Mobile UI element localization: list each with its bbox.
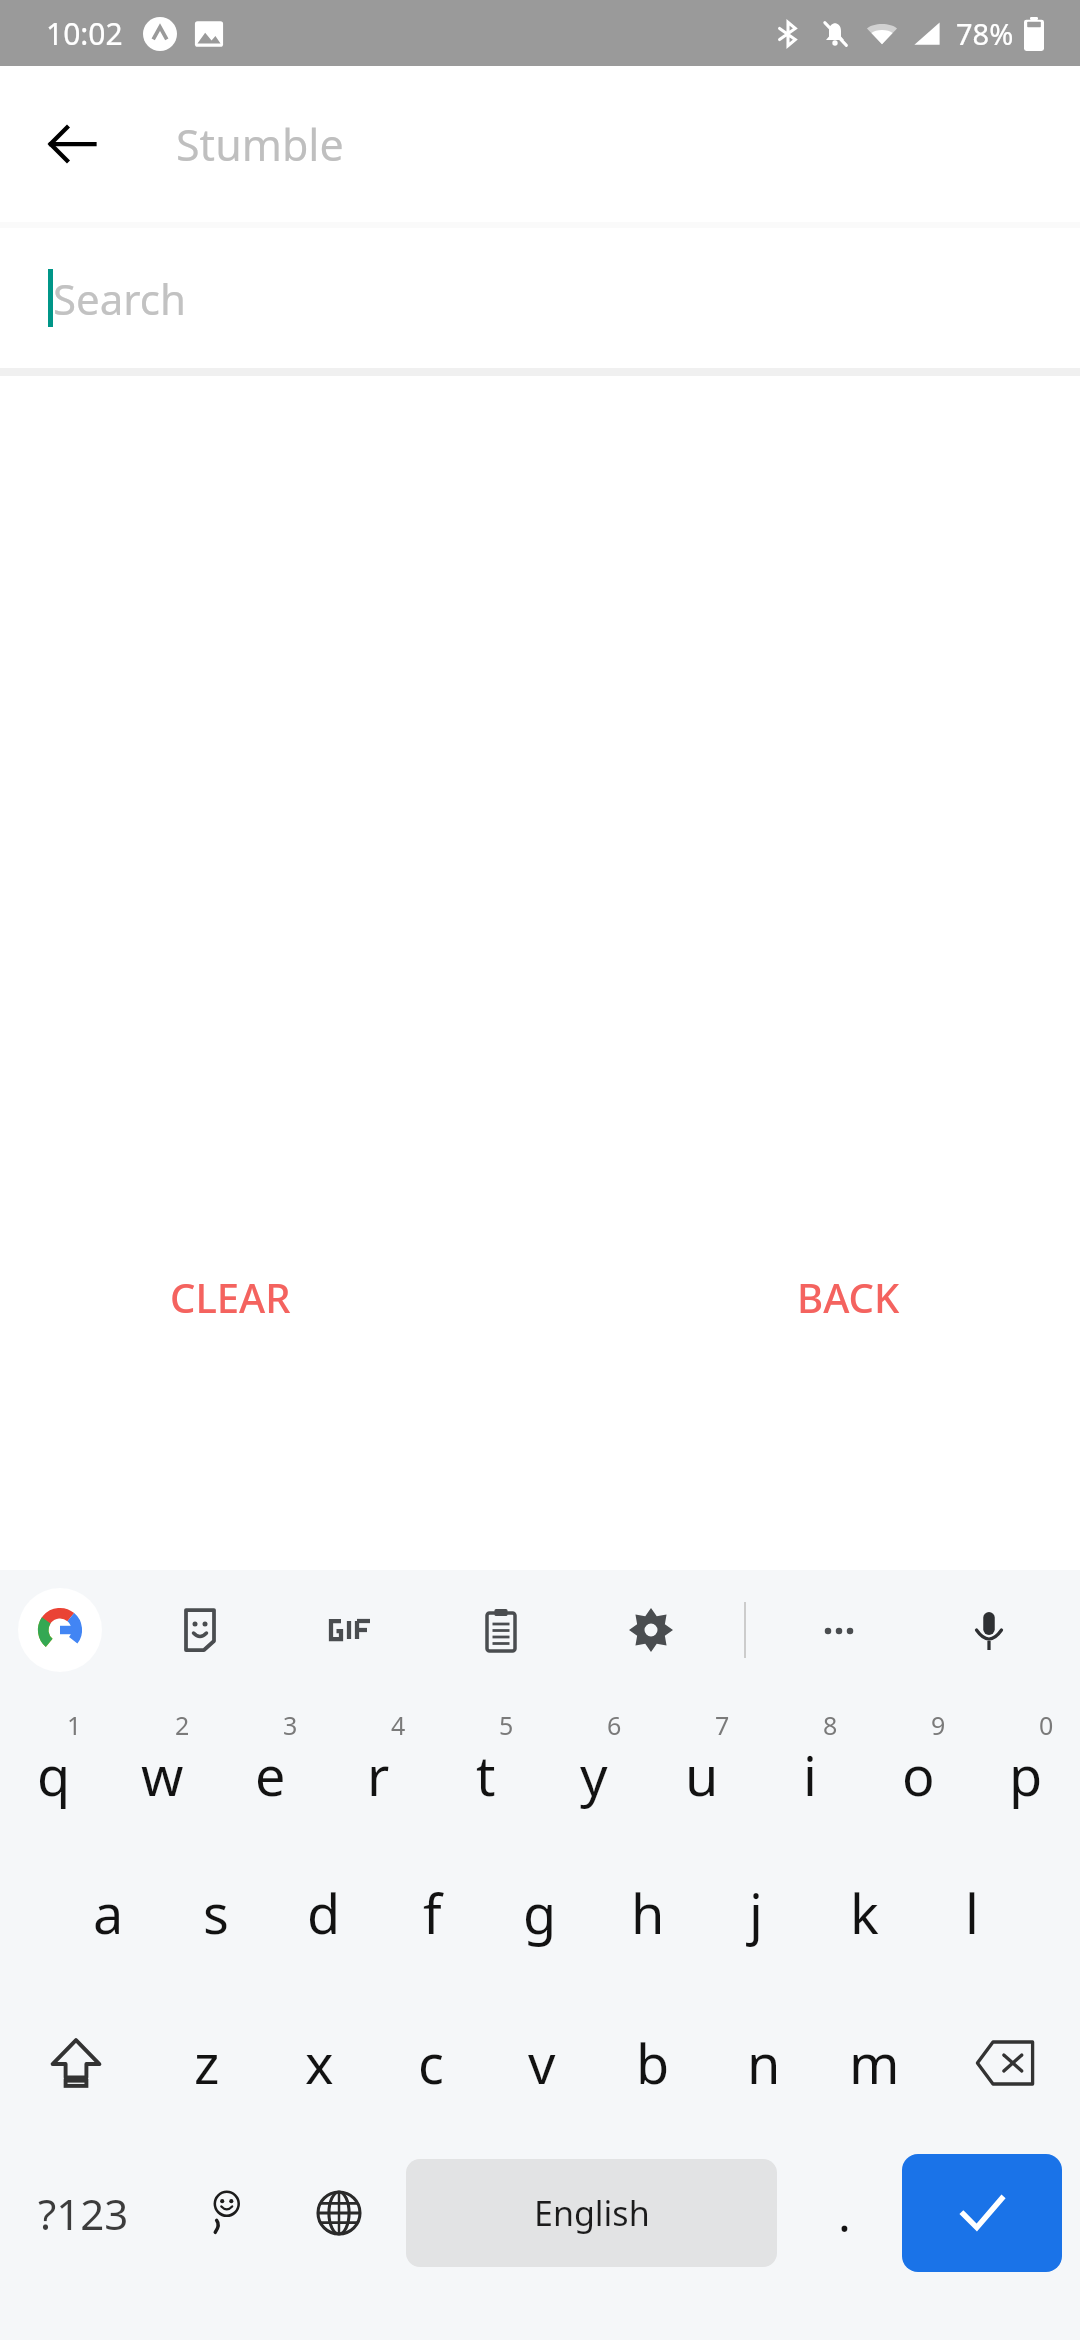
staticText: h	[631, 1876, 665, 1950]
staticText: 10:02	[46, 13, 123, 54]
staticText: Stumble	[176, 115, 344, 174]
staticText: c	[418, 2026, 444, 2100]
button[interactable]: Shift	[0, 1988, 151, 2138]
button[interactable]: 8	[756, 1690, 864, 1838]
staticText: 4	[391, 1708, 406, 1742]
staticText: n	[747, 2026, 781, 2100]
button[interactable]: v	[486, 1988, 597, 2138]
button[interactable]: g	[486, 1838, 594, 1988]
button[interactable]: 6	[540, 1690, 648, 1838]
staticText: i	[803, 1738, 817, 1812]
staticText: q	[37, 1738, 71, 1812]
button[interactable]: More options	[764, 1570, 914, 1690]
staticText: x	[305, 2026, 334, 2100]
button[interactable]: Backspace	[930, 1988, 1080, 2138]
staticText: u	[685, 1738, 719, 1812]
staticText: English	[534, 2190, 650, 2236]
staticText: a	[93, 1876, 124, 1950]
staticText: 3	[283, 1708, 298, 1742]
staticText: o	[902, 1738, 935, 1812]
button[interactable]: ?123	[0, 2138, 166, 2288]
staticText: b	[636, 2026, 670, 2100]
staticText: l	[965, 1876, 979, 1950]
staticText: v	[528, 2026, 556, 2100]
staticText: 78%	[956, 14, 1014, 53]
button[interactable]: .	[787, 2138, 902, 2288]
button[interactable]: j	[702, 1838, 810, 1988]
button[interactable]: Back	[24, 96, 120, 192]
button[interactable]: 5	[432, 1690, 540, 1838]
button[interactable]: Emoji and comma	[166, 2138, 281, 2288]
staticText: m	[849, 2026, 900, 2100]
staticText: p	[1009, 1738, 1043, 1812]
staticText: .	[838, 2181, 851, 2246]
staticText: BACK	[797, 1270, 900, 1324]
staticText: g	[523, 1876, 557, 1950]
staticText: ?123	[38, 2185, 129, 2242]
staticText: CLEAR	[170, 1270, 291, 1324]
button[interactable]: English	[406, 2159, 777, 2267]
button[interactable]: 0	[972, 1690, 1080, 1838]
button[interactable]: Clipboard	[426, 1570, 576, 1690]
button[interactable]: a	[54, 1838, 162, 1988]
staticText: e	[255, 1738, 286, 1812]
button[interactable]: Enter	[902, 2154, 1062, 2272]
button[interactable]: 2	[108, 1690, 216, 1838]
staticText: y	[580, 1738, 608, 1812]
button[interactable]: 9	[864, 1690, 972, 1838]
staticText: d	[307, 1876, 341, 1950]
staticText: w	[141, 1738, 184, 1812]
staticText: t	[476, 1738, 496, 1812]
button[interactable]: l	[918, 1838, 1026, 1988]
staticText: r	[367, 1738, 390, 1812]
button[interactable]: b	[597, 1988, 708, 2138]
staticText: 9	[931, 1708, 946, 1742]
button[interactable]: Search	[0, 228, 1080, 368]
button[interactable]: k	[810, 1838, 918, 1988]
button[interactable]: d	[270, 1838, 378, 1988]
staticText: 7	[715, 1708, 730, 1742]
button[interactable]: 3	[216, 1690, 324, 1838]
staticText: 1	[67, 1708, 82, 1742]
button[interactable]: 1	[0, 1690, 108, 1838]
staticText: Search	[53, 270, 186, 327]
staticText: z	[194, 2026, 220, 2100]
staticText: 5	[499, 1708, 514, 1742]
staticText: 2	[175, 1708, 190, 1742]
button[interactable]: BACK	[777, 1256, 920, 1338]
button[interactable]: h	[594, 1838, 702, 1988]
button[interactable]: n	[708, 1988, 819, 2138]
button[interactable]: Settings	[576, 1570, 726, 1690]
staticText: f	[423, 1876, 442, 1950]
button[interactable]: Stickers	[124, 1570, 275, 1690]
staticText: 8	[823, 1708, 838, 1742]
button[interactable]: 7	[648, 1690, 756, 1838]
staticText: s	[203, 1876, 229, 1950]
button[interactable]: Voice input	[914, 1570, 1064, 1690]
button[interactable]: m	[819, 1988, 930, 2138]
staticText: j	[749, 1876, 763, 1950]
button[interactable]: GIF	[275, 1570, 426, 1690]
staticText: 6	[607, 1708, 622, 1742]
button[interactable]: Google search	[18, 1588, 102, 1672]
button[interactable]: c	[375, 1988, 486, 2138]
button[interactable]: CLEAR	[150, 1256, 311, 1338]
button[interactable]: 4	[324, 1690, 432, 1838]
staticText: k	[850, 1876, 879, 1950]
button[interactable]: z	[151, 1988, 263, 2138]
staticText: 0	[1039, 1708, 1054, 1742]
button[interactable]: s	[162, 1838, 270, 1988]
button[interactable]: f	[378, 1838, 486, 1988]
button[interactable]: x	[263, 1988, 375, 2138]
button[interactable]: Change language	[281, 2138, 396, 2288]
